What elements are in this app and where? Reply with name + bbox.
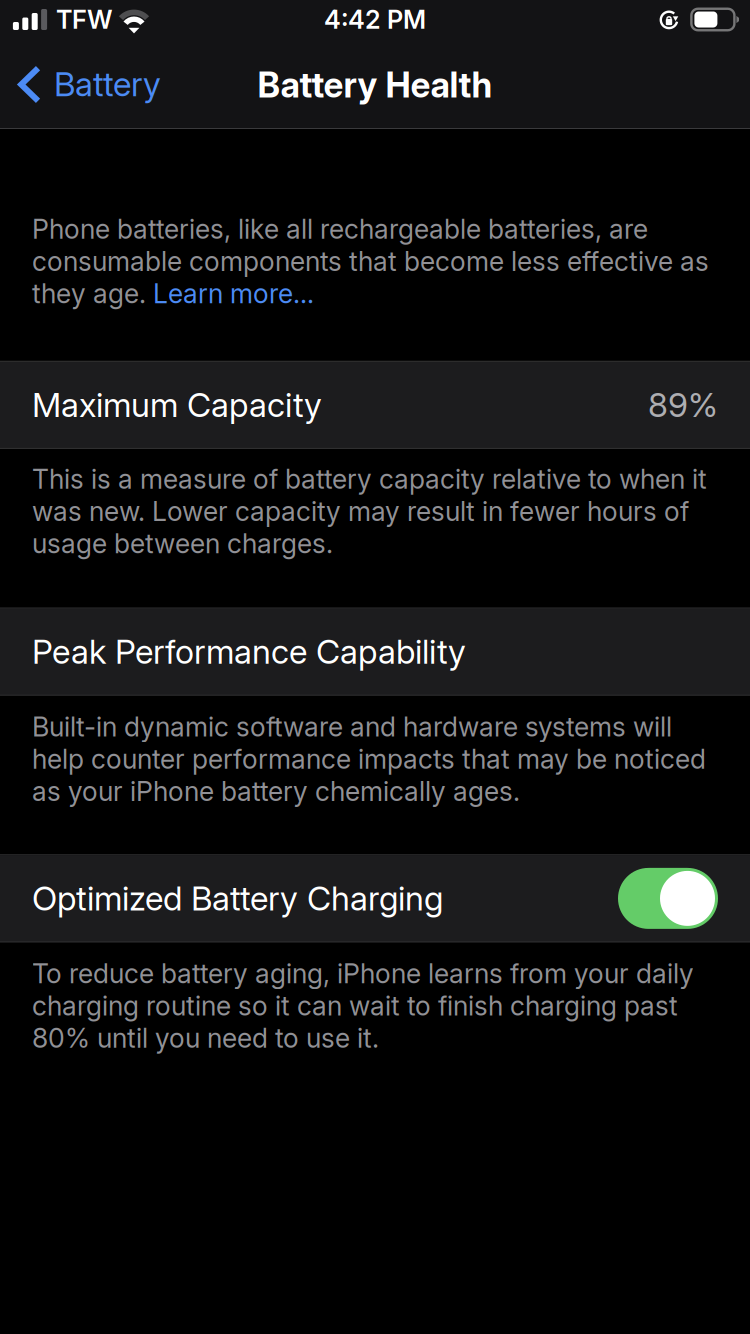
staticText: Battery xyxy=(54,64,161,104)
staticText: To reduce battery aging, iPhone learns f… xyxy=(32,957,694,1054)
button[interactable]: Battery xyxy=(0,51,175,119)
staticText: Phone batteries, like all rechargeable b… xyxy=(32,213,709,310)
staticText: Built-in dynamic software and hardware s… xyxy=(32,711,706,807)
staticText: TFW xyxy=(56,4,113,35)
button[interactable]: Maximum Capacity xyxy=(0,362,750,448)
staticText: Maximum Capacity xyxy=(32,385,322,425)
staticText: 89% xyxy=(648,385,718,425)
button[interactable]: Optimized Battery Charging xyxy=(618,868,718,929)
button[interactable]: Peak Performance Capability xyxy=(0,609,750,695)
staticText: Battery Health xyxy=(257,64,492,106)
staticText: Peak Performance Capability xyxy=(32,631,466,672)
staticText: Optimized Battery Charging xyxy=(32,878,443,918)
staticText: This is a measure of battery capacity re… xyxy=(32,463,707,560)
staticText: 4:42 PM xyxy=(324,4,426,35)
button[interactable]: Phone batteries, like all rechargeable b… xyxy=(0,213,750,310)
